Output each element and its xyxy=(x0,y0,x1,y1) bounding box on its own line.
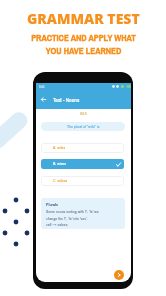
button[interactable]: A. wifes xyxy=(41,143,124,153)
staticText: B. wives xyxy=(53,161,66,167)
staticText: A. wifes xyxy=(53,145,66,151)
staticText: Some nouns ending with 'f', 'fe' we chan… xyxy=(46,209,99,227)
staticText: Plurals xyxy=(46,201,59,207)
staticText: GRAMMAR TEST xyxy=(27,9,140,28)
staticText: 6/15 xyxy=(80,111,87,117)
button[interactable]: B. wives xyxy=(41,159,124,169)
staticText: Test - Nouns xyxy=(53,96,80,104)
button[interactable]: C. wifees xyxy=(41,176,124,186)
staticText: The plural of "wife" is xyxy=(67,124,100,130)
staticText: PRACTICE AND APPLY WHAT YOU HAVE LEARNED xyxy=(31,32,136,57)
staticText: 9:41 xyxy=(39,84,45,89)
staticText: C. wifees xyxy=(53,178,68,184)
button[interactable]: Next question xyxy=(114,270,124,280)
button[interactable]: Back xyxy=(38,94,48,105)
